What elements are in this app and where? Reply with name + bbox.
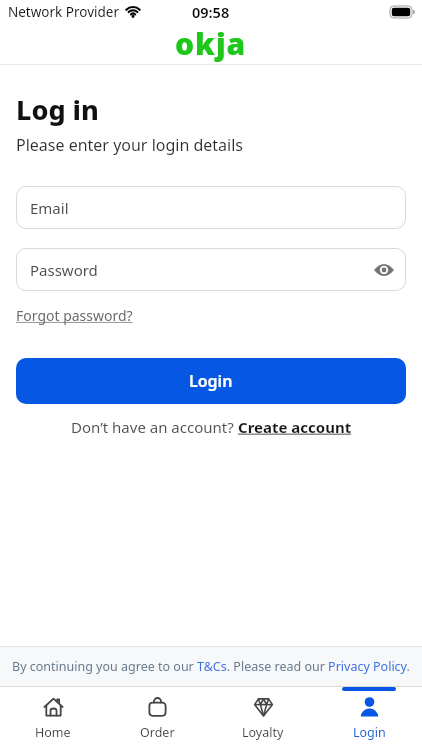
staticText: By continuing you agree to our T&Cs. Ple… [12, 658, 410, 675]
staticText: Email [30, 198, 69, 218]
staticText: Network Provider [8, 3, 120, 21]
button[interactable]: Login [316, 687, 422, 750]
staticText: Please enter your login details [16, 134, 243, 156]
staticText: Don’t have an account? [71, 417, 238, 437]
staticText: okja [175, 23, 247, 64]
staticText: Login [189, 370, 233, 392]
button[interactable]: Login [16, 358, 406, 404]
button[interactable]: Create account [238, 417, 352, 437]
staticText: Log in [16, 91, 99, 128]
button[interactable]: Order [105, 687, 210, 750]
button[interactable]: Home [0, 687, 105, 750]
button[interactable]: Loyalty [210, 687, 316, 750]
staticText: Login [353, 724, 386, 741]
staticText: Password [30, 260, 98, 280]
staticText: Loyalty [242, 724, 284, 741]
staticText: Home [35, 724, 71, 741]
button[interactable]: Forgot password? [16, 306, 133, 325]
button[interactable]: Email [16, 186, 406, 229]
button[interactable]: Password [16, 248, 406, 291]
staticText: Order [140, 724, 175, 741]
staticText: 09:58 [192, 2, 230, 22]
